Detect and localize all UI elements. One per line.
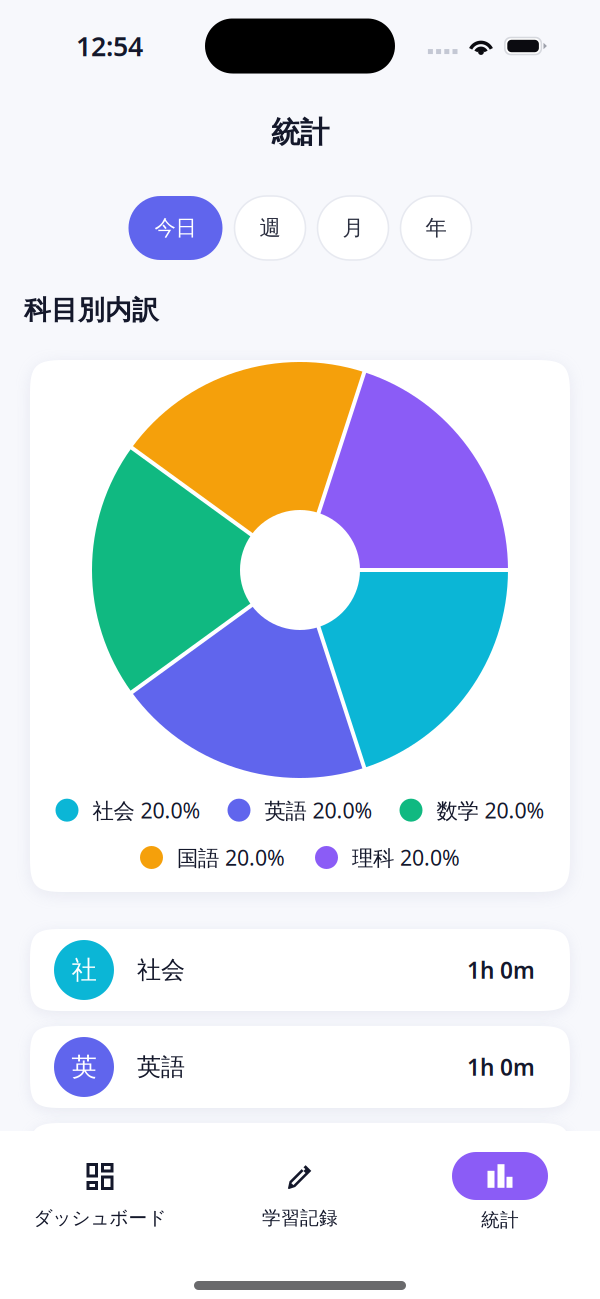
staticText: 英 [71, 1051, 96, 1082]
staticText: 月 [342, 215, 363, 241]
staticText: 統計 [481, 1208, 519, 1231]
staticText: 週 [259, 215, 280, 241]
staticText: 12:54 [76, 28, 143, 64]
staticText: 1h 0m [467, 1149, 535, 1179]
button[interactable]: 学習記録 [200, 1131, 400, 1299]
staticText: 数 [71, 1148, 96, 1179]
button[interactable]: 英 [30, 1026, 570, 1108]
staticText: 1h 0m [467, 955, 535, 985]
staticText: 学習記録 [262, 1206, 338, 1229]
staticText: 国語 20.0% [177, 843, 285, 872]
staticText: 年 [425, 215, 446, 241]
button[interactable]: 数 [30, 1123, 570, 1205]
staticText: 英語 20.0% [264, 796, 372, 824]
staticText: 統計 [271, 114, 329, 150]
staticText: 社会 20.0% [92, 796, 200, 824]
staticText: 英語 [137, 1052, 185, 1082]
staticText: 今日 [154, 215, 196, 241]
button[interactable]: 年 [400, 196, 471, 260]
staticText: 1h 0m [467, 1052, 535, 1082]
staticText: 数学 20.0% [436, 796, 544, 824]
staticText: 社会 [137, 955, 185, 985]
staticText: 社 [71, 954, 96, 985]
button[interactable]: 今日 [128, 196, 222, 260]
button[interactable]: 社 [30, 929, 570, 1011]
staticText: 理科 20.0% [352, 843, 460, 872]
staticText: 科目別内訳 [24, 294, 159, 326]
button[interactable]: ダッシュボード [0, 1131, 200, 1299]
button[interactable]: 週 [234, 196, 305, 260]
button[interactable]: 月 [317, 196, 388, 260]
staticText: ダッシュボード [33, 1206, 166, 1229]
button[interactable]: 統計 [400, 1131, 600, 1299]
